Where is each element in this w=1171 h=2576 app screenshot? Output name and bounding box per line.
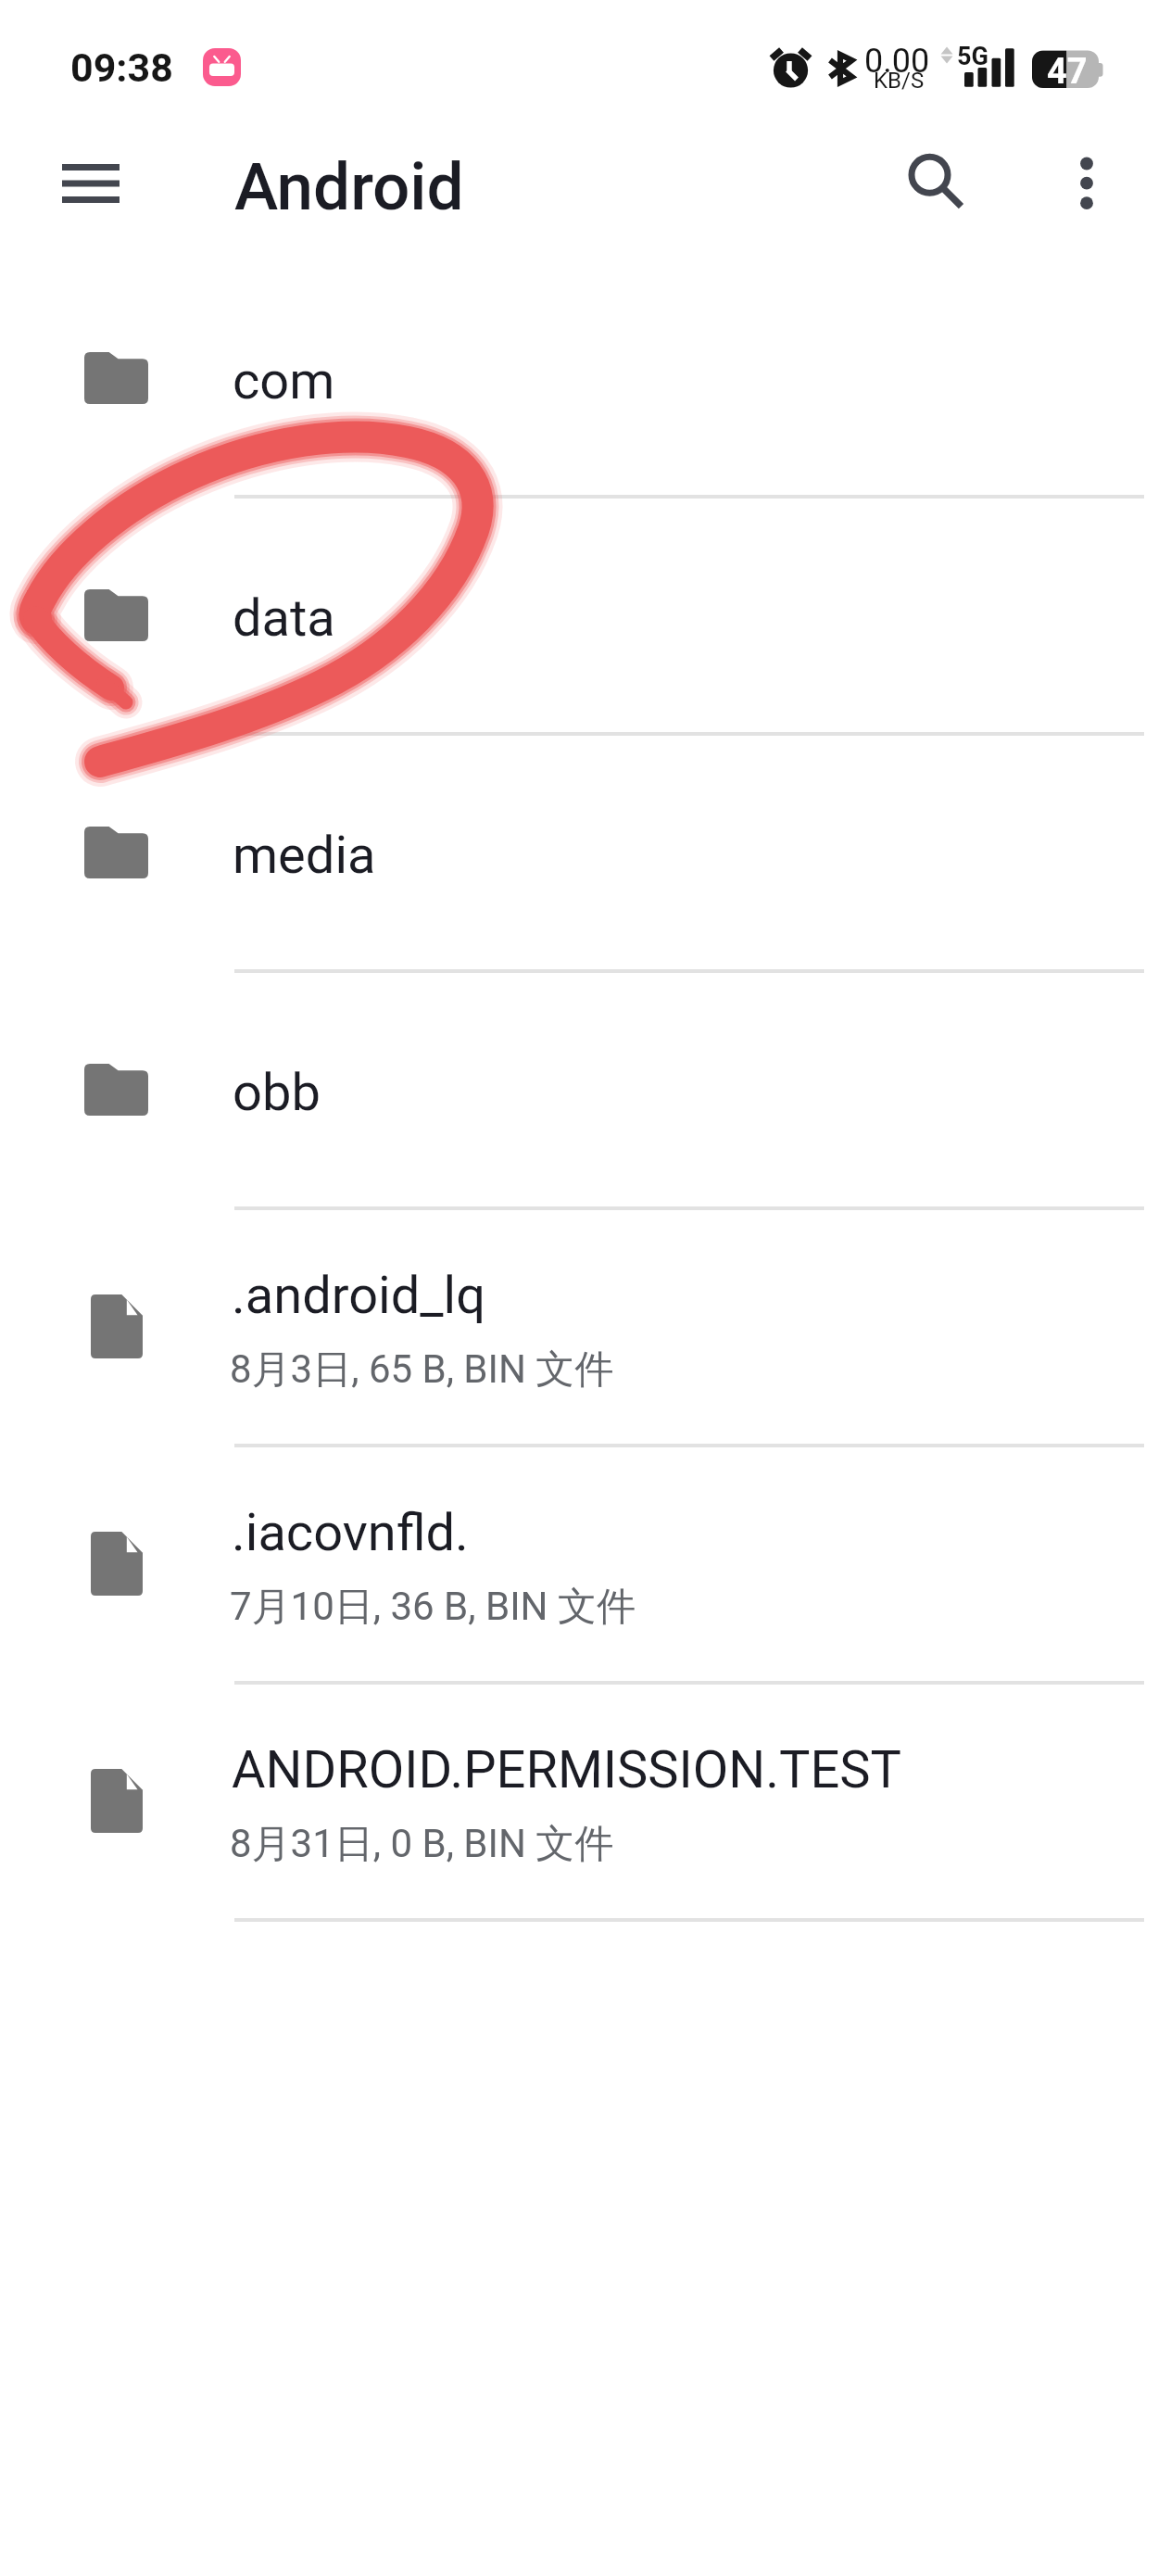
button[interactable]: .android_lq	[0, 1210, 1171, 1447]
button[interactable]: Search	[881, 135, 977, 232]
staticText: com	[233, 350, 335, 411]
staticText: obb	[233, 1062, 321, 1123]
staticText: media	[233, 825, 376, 886]
button[interactable]: ANDROID.PERMISSION.TEST	[0, 1685, 1171, 1922]
staticText: 5G	[957, 42, 988, 71]
button[interactable]: data	[0, 499, 1171, 736]
staticText: 47	[1047, 51, 1088, 93]
staticText: 09:38	[70, 44, 173, 91]
staticText: 0.00	[864, 42, 930, 81]
button[interactable]: .iacovnfld.	[0, 1447, 1171, 1685]
button[interactable]: Navigation menu	[43, 135, 139, 232]
button[interactable]: media	[0, 736, 1171, 973]
staticText: 7月10日, 36 B, BIN 文件	[230, 1583, 636, 1632]
staticText: Android	[234, 148, 464, 225]
staticText: 8月31日, 0 B, BIN 文件	[230, 1820, 614, 1869]
staticText: data	[233, 587, 335, 649]
staticText: .android_lq	[232, 1265, 486, 1326]
staticText: 8月3日, 65 B, BIN 文件	[230, 1345, 614, 1395]
button[interactable]: com	[0, 261, 1171, 499]
staticText: KB/S	[874, 68, 925, 94]
staticText: ANDROID.PERMISSION.TEST	[232, 1739, 901, 1800]
staticText: .iacovnfld.	[232, 1502, 469, 1563]
button[interactable]: obb	[0, 973, 1171, 1210]
button[interactable]: More options	[1039, 135, 1135, 232]
